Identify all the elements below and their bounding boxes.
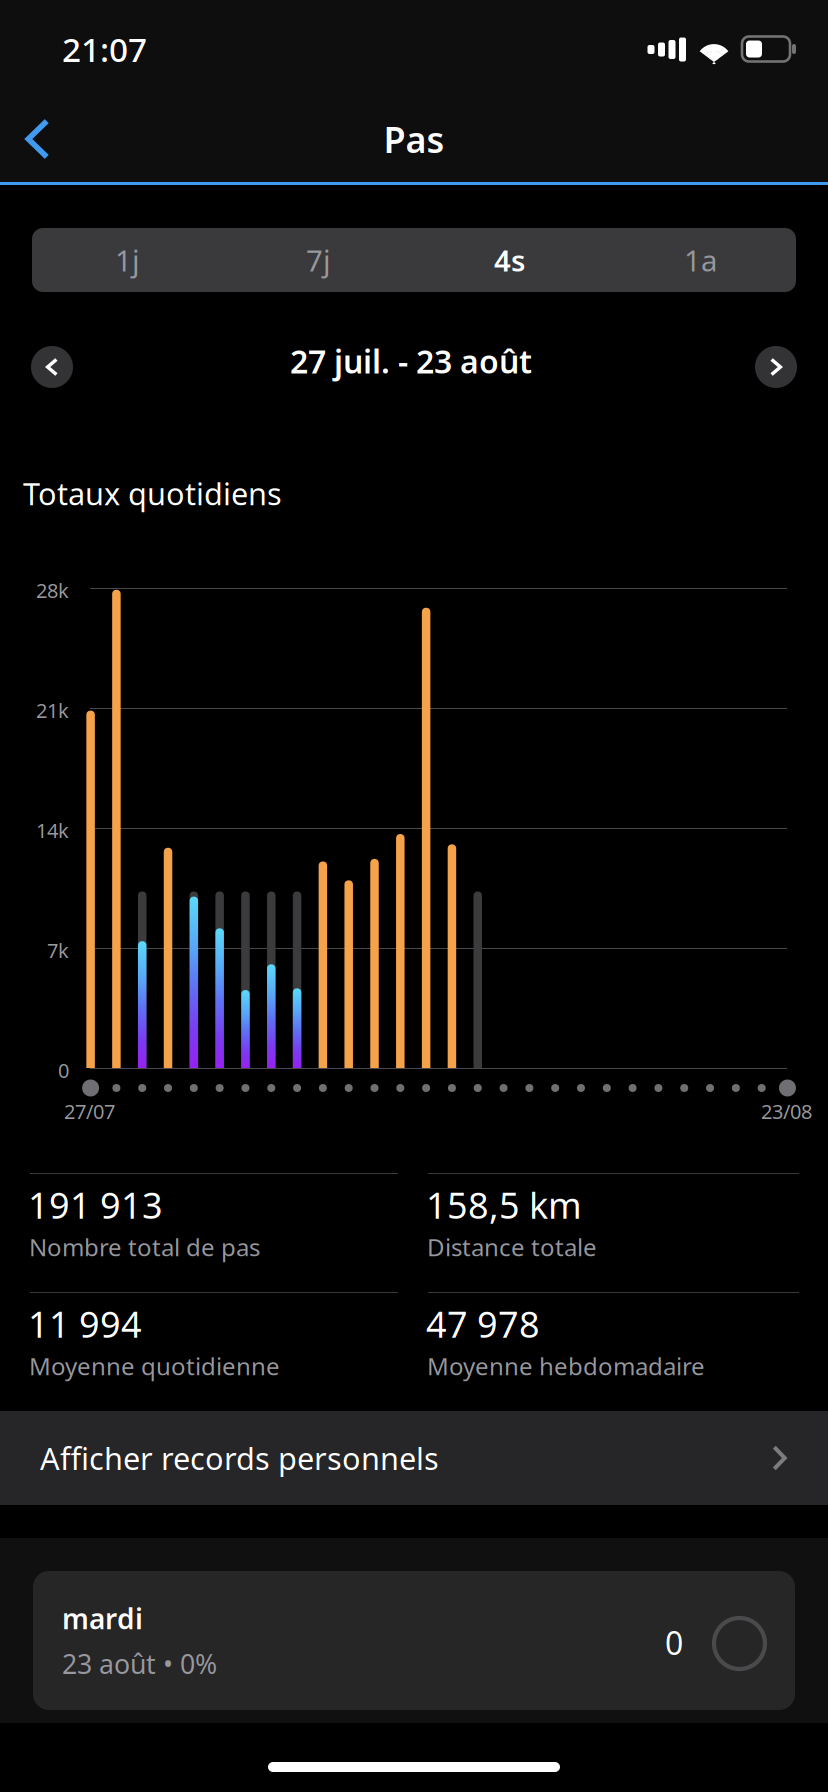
staticText: 7k [47, 937, 69, 964]
staticText: 0 [58, 1057, 69, 1084]
staticText: Afficher records personnels [40, 1438, 439, 1478]
staticText: 23 août • 0% [62, 1646, 217, 1681]
staticText: 191 913 [28, 1181, 163, 1229]
staticText: 0 [665, 1621, 683, 1664]
staticText: 28k [36, 577, 69, 604]
staticText: 27 juil. - 23 août [290, 340, 532, 382]
staticText: 23/08 [761, 1098, 812, 1125]
staticText: 27/07 [64, 1098, 115, 1125]
button[interactable]: mardi [33, 1571, 795, 1710]
staticText: 158,5 km [426, 1181, 582, 1229]
staticText: Distance totale [427, 1231, 597, 1263]
staticText: mardi [62, 1600, 143, 1637]
button[interactable]: Previous period [20, 335, 84, 399]
staticText: 21k [36, 697, 69, 724]
staticText: 1a [684, 240, 717, 279]
staticText: Moyenne hebdomadaire [427, 1350, 705, 1382]
staticText: 11 994 [28, 1300, 142, 1348]
staticText: Totaux quotidiens [23, 473, 282, 514]
button[interactable]: Next period [744, 335, 808, 399]
staticText: 21:07 [62, 27, 147, 71]
staticText: Nombre total de pas [29, 1231, 260, 1263]
button[interactable]: Back [0, 94, 87, 184]
button[interactable]: Afficher records personnels [0, 1411, 828, 1505]
staticText: 14k [36, 817, 69, 844]
staticText: 4s [494, 240, 525, 279]
staticText: 47 978 [426, 1300, 540, 1348]
staticText: 1j [115, 240, 140, 279]
staticText: Moyenne quotidienne [29, 1350, 280, 1382]
button[interactable]: 4s [414, 228, 605, 292]
button[interactable]: 7j [223, 228, 414, 292]
button[interactable]: 1a [605, 228, 796, 292]
button[interactable]: 1j [32, 228, 223, 292]
staticText: 7j [306, 240, 331, 279]
staticText: Pas [383, 115, 444, 163]
